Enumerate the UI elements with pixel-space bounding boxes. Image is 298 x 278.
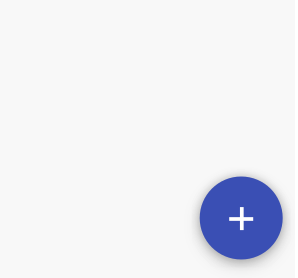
button[interactable]: Add xyxy=(200,176,283,259)
